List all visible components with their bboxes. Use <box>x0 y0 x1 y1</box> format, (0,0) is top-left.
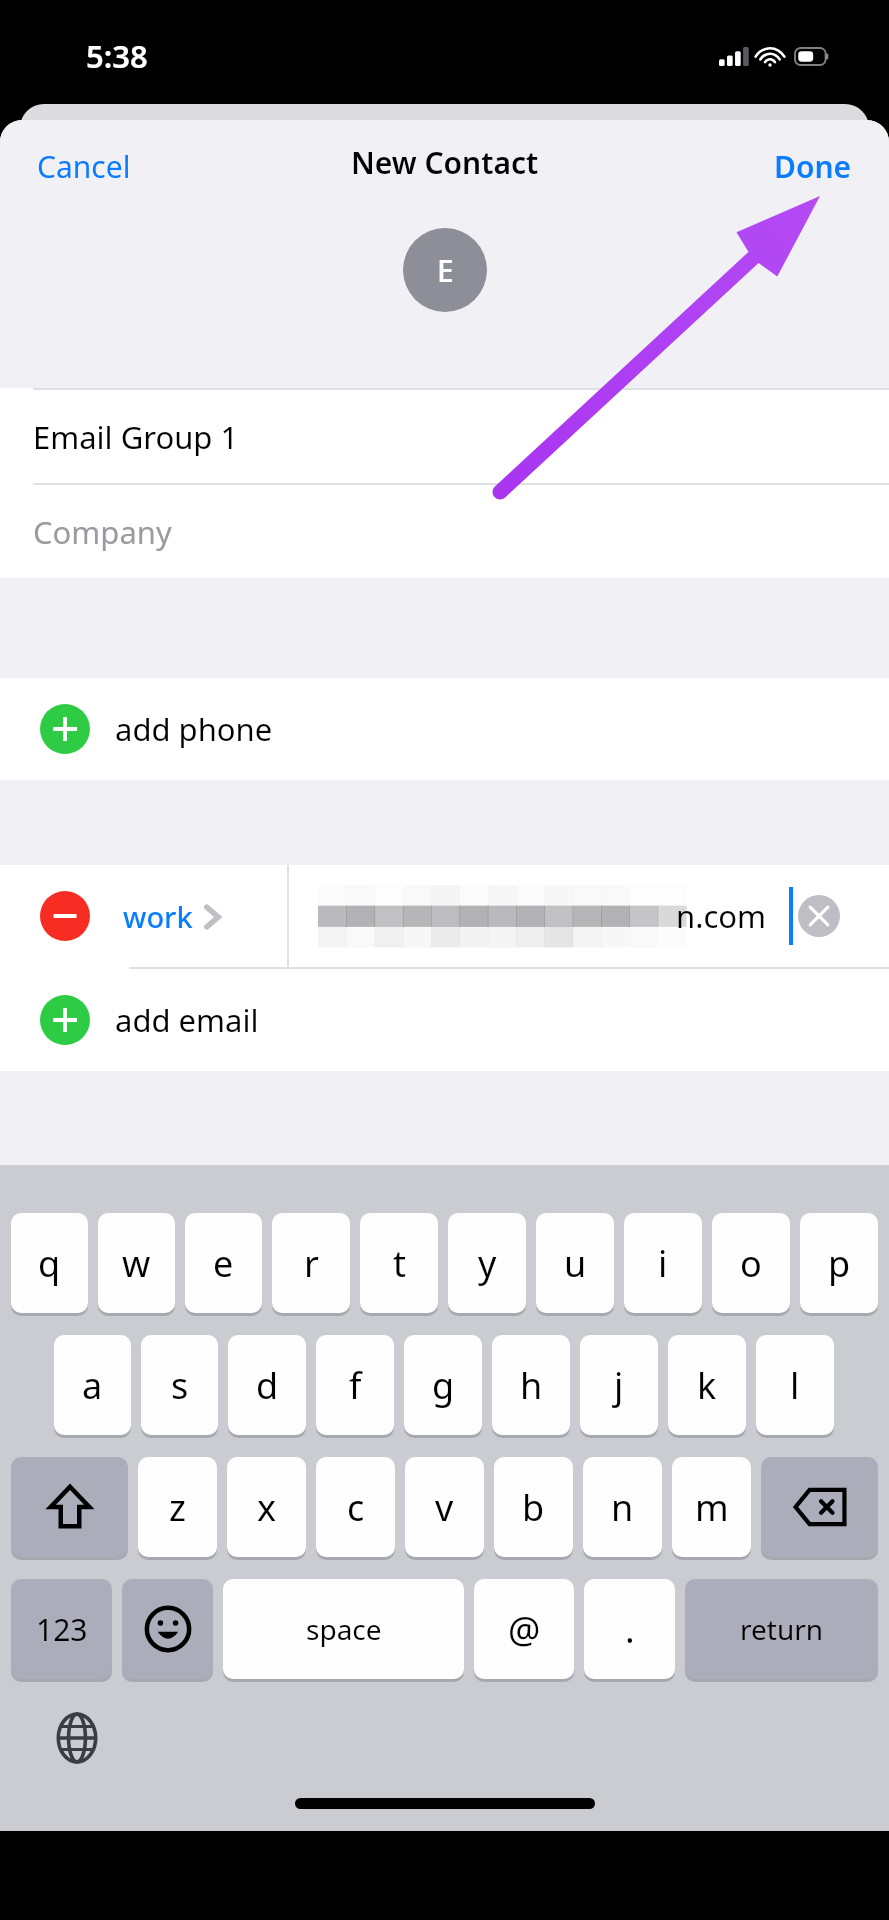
staticText: m <box>695 1483 729 1532</box>
button[interactable]: b <box>494 1457 573 1557</box>
button[interactable]: l <box>756 1335 834 1435</box>
staticText: return <box>740 1610 824 1648</box>
button[interactable]: r <box>272 1213 350 1313</box>
button[interactable]: add email <box>0 969 889 1071</box>
staticText: k <box>697 1361 717 1410</box>
staticText: c <box>347 1483 365 1532</box>
button[interactable]: Numbers <box>11 1579 112 1679</box>
staticText: n <box>611 1483 634 1532</box>
staticText: g <box>432 1361 455 1410</box>
staticText: Company <box>33 511 172 553</box>
button[interactable]: t <box>360 1213 438 1313</box>
staticText: q <box>38 1239 61 1288</box>
button[interactable]: s <box>141 1335 218 1435</box>
button[interactable]: y <box>448 1213 526 1313</box>
button[interactable]: Remove email <box>40 891 90 941</box>
button[interactable]: Company <box>0 485 889 578</box>
staticText: s <box>171 1361 189 1410</box>
button[interactable]: Email Group 1 <box>0 390 889 483</box>
button[interactable]: i <box>624 1213 702 1313</box>
button[interactable]: f <box>316 1335 394 1435</box>
staticText: j <box>614 1361 624 1410</box>
staticText: p <box>828 1239 851 1288</box>
button[interactable]: m <box>672 1457 751 1557</box>
button[interactable]: d <box>228 1335 306 1435</box>
staticText: h <box>520 1361 543 1410</box>
staticText: add phone <box>115 708 273 750</box>
button[interactable]: k <box>668 1335 746 1435</box>
staticText: . <box>625 1605 635 1654</box>
staticText: f <box>349 1361 362 1410</box>
button[interactable]: Clear text <box>798 895 840 937</box>
staticText: b <box>522 1483 545 1532</box>
staticText: E <box>437 250 454 291</box>
button[interactable]: Contact photo <box>403 228 487 312</box>
staticText: Email Group 1 <box>33 416 239 458</box>
staticText: i <box>658 1239 668 1288</box>
button[interactable]: n <box>583 1457 662 1557</box>
staticText: 5:38 <box>86 35 148 77</box>
staticText: x <box>257 1483 277 1532</box>
staticText: l <box>790 1361 800 1410</box>
staticText: w <box>122 1239 151 1288</box>
button[interactable]: Return <box>685 1579 878 1679</box>
staticText: d <box>256 1361 279 1410</box>
staticText: @ <box>508 1605 541 1654</box>
button[interactable]: space <box>223 1579 464 1679</box>
button[interactable]: h <box>492 1335 570 1435</box>
button[interactable]: Backspace <box>761 1457 878 1557</box>
staticText: y <box>478 1239 497 1288</box>
button[interactable]: u <box>536 1213 614 1313</box>
staticText: space <box>306 1610 382 1648</box>
staticText: add email <box>115 999 259 1041</box>
button[interactable]: @ <box>474 1579 574 1679</box>
button[interactable]: e <box>185 1213 262 1313</box>
staticText: t <box>393 1239 406 1288</box>
button[interactable]: g <box>404 1335 482 1435</box>
button[interactable]: Emoji <box>122 1579 213 1679</box>
staticText: e <box>213 1239 234 1288</box>
button[interactable]: z <box>138 1457 217 1557</box>
staticText: work <box>123 897 193 936</box>
button[interactable]: Done <box>770 142 856 191</box>
staticText: n.com <box>676 895 767 937</box>
button[interactable]: . <box>584 1579 675 1679</box>
button[interactable]: x <box>227 1457 306 1557</box>
staticText: 123 <box>36 1609 88 1650</box>
button[interactable]: q <box>11 1213 88 1313</box>
button[interactable]: p <box>800 1213 878 1313</box>
staticText: New Contact <box>351 142 539 183</box>
button[interactable]: w <box>98 1213 175 1313</box>
button[interactable]: o <box>712 1213 790 1313</box>
button[interactable]: v <box>405 1457 484 1557</box>
staticText: v <box>435 1483 454 1532</box>
button[interactable]: a <box>54 1335 131 1435</box>
staticText: z <box>169 1483 186 1532</box>
button[interactable]: Cancel <box>33 142 135 191</box>
staticText: r <box>304 1239 319 1288</box>
button[interactable]: j <box>580 1335 658 1435</box>
staticText: o <box>740 1239 762 1288</box>
staticText: u <box>564 1239 587 1288</box>
button[interactable]: Switch keyboard <box>48 1709 106 1767</box>
button[interactable]: work <box>123 897 220 936</box>
button[interactable]: Shift <box>11 1457 128 1557</box>
button[interactable]: add phone <box>0 678 889 780</box>
staticText: a <box>82 1361 103 1410</box>
button[interactable]: c <box>316 1457 395 1557</box>
